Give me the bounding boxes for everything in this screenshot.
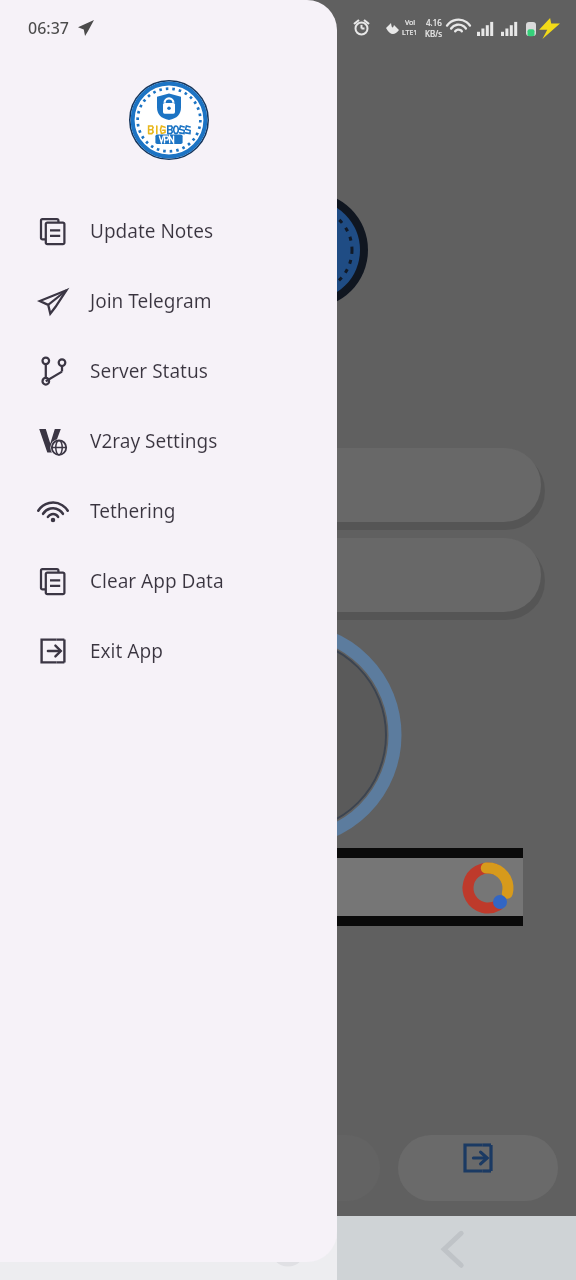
- staticText: ble.: [150, 225, 179, 248]
- staticText: Vol: [405, 18, 416, 28]
- button[interactable]: Join Telegram: [0, 266, 337, 336]
- staticText: Tethering: [90, 498, 176, 524]
- staticText: V2ray Settings: [90, 428, 218, 454]
- staticText: 4.16: [426, 17, 442, 28]
- staticText: Update Notes: [90, 218, 214, 244]
- staticText: KB/s: [425, 28, 442, 39]
- staticText: Server Status: [90, 358, 208, 384]
- staticText: :60 test ad.: [168, 437, 246, 457]
- button[interactable]: Server Status: [0, 336, 337, 406]
- other: Alarm: [353, 20, 370, 37]
- button[interactable]: Tethering: [0, 476, 337, 546]
- button[interactable]: Update Notes: [0, 196, 337, 266]
- staticText: Join Telegram: [90, 288, 212, 314]
- button[interactable]: Exit App: [0, 616, 337, 686]
- staticText: 06:37: [28, 17, 69, 39]
- button[interactable]: Clear App Data: [0, 546, 337, 616]
- button[interactable]: V2ray Settings: [0, 406, 337, 476]
- staticText: ver: [140, 444, 168, 467]
- staticText: ed: [148, 348, 173, 375]
- staticText: Clear App Data: [90, 568, 224, 594]
- staticText: LTE1: [402, 28, 418, 38]
- staticText: Exit App: [90, 638, 163, 664]
